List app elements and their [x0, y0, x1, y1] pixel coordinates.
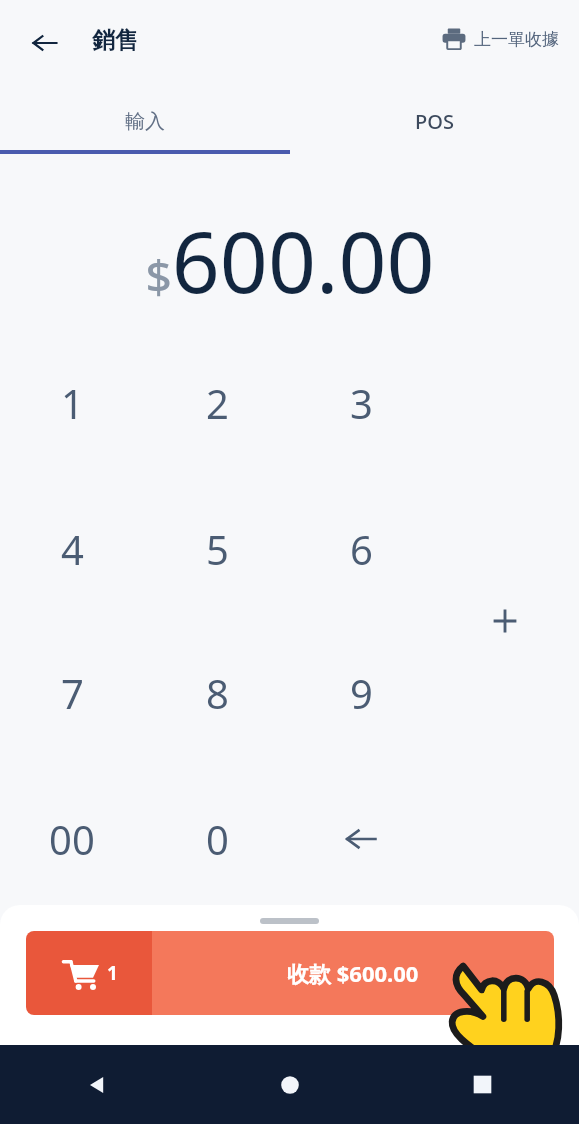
staticText: 上一單收據: [474, 29, 559, 50]
button[interactable]: 上一單收據: [435, 20, 565, 58]
button[interactable]: Home: [193, 1045, 386, 1124]
staticText: 4: [61, 522, 84, 576]
button[interactable]: POS: [289, 85, 579, 158]
button[interactable]: Recent apps: [386, 1045, 579, 1124]
staticText: 00: [49, 812, 95, 866]
staticText: 2: [206, 376, 229, 430]
staticText: 收款 $600.00: [287, 958, 419, 988]
staticText: 6: [350, 522, 373, 576]
button[interactable]: 3: [325, 367, 397, 439]
button[interactable]: 1: [26, 931, 554, 1015]
staticText: 3: [350, 376, 373, 430]
button[interactable]: Add item: [469, 585, 541, 657]
staticText: 輸入: [125, 109, 165, 134]
button[interactable]: 9: [325, 657, 397, 729]
button[interactable]: 4: [36, 513, 108, 585]
staticText: 1: [107, 960, 118, 986]
button[interactable]: 5: [181, 513, 253, 585]
button[interactable]: 7: [36, 657, 108, 729]
staticText: 9: [350, 666, 373, 720]
staticText: POS: [415, 108, 454, 135]
button[interactable]: Backspace: [325, 803, 397, 875]
staticText: 0: [206, 812, 229, 866]
staticText: 8: [206, 666, 229, 720]
staticText: 1: [61, 376, 84, 430]
staticText: 7: [61, 666, 84, 720]
button[interactable]: 8: [181, 657, 253, 729]
staticText: 5: [206, 522, 229, 576]
button[interactable]: Back: [22, 20, 68, 66]
button[interactable]: Back: [0, 1045, 193, 1124]
button[interactable]: 00: [36, 803, 108, 875]
button[interactable]: 6: [325, 513, 397, 585]
button[interactable]: 2: [181, 367, 253, 439]
button[interactable]: 輸入: [0, 85, 289, 158]
button[interactable]: 1: [36, 367, 108, 439]
button[interactable]: 0: [181, 803, 253, 875]
staticText: $600.00: [145, 203, 435, 317]
staticText: 銷售: [92, 26, 138, 55]
